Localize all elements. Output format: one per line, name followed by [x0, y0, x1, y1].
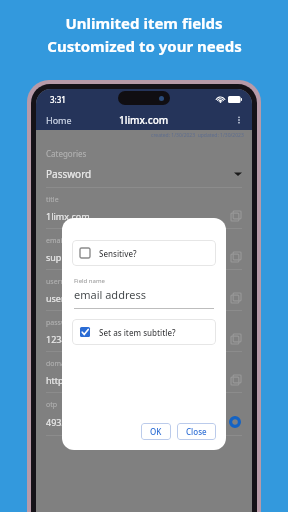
- staticText: Customized to your needs: [47, 36, 242, 56]
- staticText: 1limx.com: [46, 210, 90, 222]
- staticText: 1limx.com: [119, 113, 169, 127]
- staticText: Categories: [46, 148, 87, 159]
- button[interactable]: Home: [42, 112, 76, 128]
- staticText: Home: [46, 114, 72, 126]
- button[interactable]: Set as item subtitle?: [72, 319, 216, 345]
- staticText: support@1limx.com: [46, 251, 132, 263]
- button[interactable]: Password: [46, 167, 242, 181]
- staticText: password: [46, 318, 78, 328]
- staticText: email: [46, 236, 65, 246]
- staticText: 12345678: [46, 333, 88, 345]
- staticText: title: [46, 195, 59, 205]
- button[interactable]: Copy password: [230, 333, 242, 345]
- staticText: Set as item subtitle?: [99, 327, 176, 338]
- staticText: username: [46, 277, 80, 287]
- button[interactable]: More options: [230, 111, 248, 129]
- staticText: username: [46, 292, 89, 304]
- staticText: otp: [46, 400, 58, 410]
- button[interactable]: Sensitive?: [72, 240, 216, 266]
- button[interactable]: Copy email: [230, 251, 242, 263]
- staticText: 3:31: [50, 94, 66, 105]
- staticText: OK: [150, 426, 162, 437]
- button[interactable]: Close: [177, 423, 216, 440]
- staticText: created: 1/30/2023 updated: 1/30/2023: [151, 132, 244, 139]
- staticText: Password: [46, 167, 92, 181]
- button[interactable]: OK: [141, 423, 171, 440]
- button[interactable]: Refresh OTP: [228, 415, 242, 429]
- button[interactable]: Copy title: [230, 210, 242, 222]
- button[interactable]: Copy username: [230, 292, 242, 304]
- button[interactable]: Edit: [202, 416, 223, 429]
- staticText: email address: [74, 287, 146, 302]
- staticText: Edit: [206, 418, 219, 428]
- staticText: Field name: [74, 277, 105, 285]
- staticText: Sensitive?: [99, 248, 137, 259]
- staticText: Close: [186, 426, 207, 437]
- staticText: domain: [46, 359, 72, 369]
- staticText: https://1limx.com: [46, 374, 121, 386]
- staticText: 493322: [46, 416, 77, 428]
- button[interactable]: Copy domain: [230, 374, 242, 386]
- staticText: Unlimited item fields: [65, 13, 223, 33]
